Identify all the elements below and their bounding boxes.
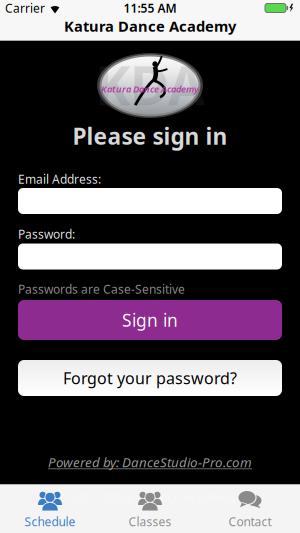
staticText: Schedule xyxy=(24,513,75,529)
staticText: Sign in xyxy=(122,308,178,331)
button[interactable]: Forgot your password? xyxy=(18,360,282,396)
staticText: Forgot your password? xyxy=(63,367,237,389)
staticText: Please sign in xyxy=(72,121,227,151)
button[interactable]: Contact xyxy=(200,485,300,532)
staticText: Katura Dance Academy xyxy=(101,83,199,95)
button[interactable]: Sign in xyxy=(18,300,282,340)
staticText: Katura Dance Academy xyxy=(64,16,236,36)
staticText: Powered by: DanceStudio-Pro.com xyxy=(48,453,252,471)
staticText: © 2011 Katura Dance Academy xyxy=(60,489,235,505)
button[interactable]: Schedule xyxy=(0,485,100,532)
staticText: 11:55 AM xyxy=(123,0,176,16)
staticText: Passwords are Case-Sensitive xyxy=(18,281,185,297)
staticText: Contact xyxy=(228,513,271,529)
staticText: Classes xyxy=(128,513,171,529)
staticText: KDA xyxy=(95,49,205,120)
staticText: Password: xyxy=(18,226,75,242)
button[interactable]: Email Address xyxy=(18,188,282,214)
staticText: Carrier xyxy=(5,0,45,16)
button[interactable]: Powered by: DanceStudio-Pro.com xyxy=(48,453,252,471)
staticText: Email Address: xyxy=(18,171,101,187)
button[interactable]: Password xyxy=(18,243,282,269)
button[interactable]: Classes xyxy=(100,485,200,532)
